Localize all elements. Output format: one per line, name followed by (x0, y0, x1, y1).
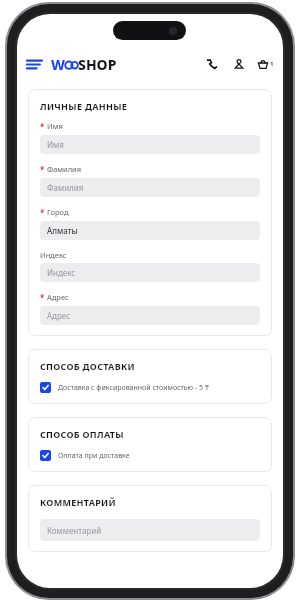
staticText: Комментарий (47, 525, 102, 536)
button[interactable]: W (51, 55, 117, 74)
staticText: СПОСОБ ОПЛАТЫ (40, 428, 124, 440)
button[interactable]: Имя (40, 135, 260, 154)
staticText: 1 (270, 60, 274, 68)
staticText: ЛИЧНЫЕ ДАННЫЕ (40, 100, 128, 112)
staticText: Индекс (40, 250, 67, 260)
button[interactable]: Call (204, 56, 220, 72)
button[interactable]: Open menu (24, 54, 44, 74)
button[interactable]: Account (231, 56, 247, 72)
staticText: Оплата при доставке (58, 451, 130, 461)
staticText: Доставка с фиксированной стоимостью - 5 … (58, 383, 209, 393)
staticText: Город (47, 207, 69, 217)
button[interactable]: Комментарий (40, 519, 260, 541)
button[interactable]: Cart, 1 item (258, 59, 274, 69)
button[interactable]: Индекс (40, 263, 260, 282)
staticText: * (40, 292, 45, 303)
staticText: * (40, 164, 45, 175)
staticText: КОММЕНТАРИЙ (40, 496, 116, 508)
staticText: Фамилия (47, 164, 82, 174)
staticText: Индекс (47, 267, 76, 278)
button[interactable]: Адрес (40, 306, 260, 325)
staticText: Фамилия (47, 182, 84, 193)
button[interactable]: Доставка с фиксированной стоимостью - 5 … (40, 382, 260, 393)
button[interactable]: Алматы (40, 221, 260, 240)
staticText: SHOP (78, 55, 117, 74)
staticText: W (51, 55, 65, 74)
button[interactable]: Фамилия (40, 178, 260, 197)
staticText: Алматы (47, 225, 78, 236)
staticText: Имя (47, 121, 63, 131)
staticText: * (40, 207, 45, 218)
staticText: * (40, 121, 45, 132)
staticText: Адрес (47, 310, 71, 321)
staticText: Адрес (47, 292, 69, 302)
staticText: Имя (47, 139, 64, 150)
staticText: СПОСОБ ДОСТАВКИ (40, 360, 135, 372)
button[interactable]: Оплата при доставке (40, 450, 260, 461)
